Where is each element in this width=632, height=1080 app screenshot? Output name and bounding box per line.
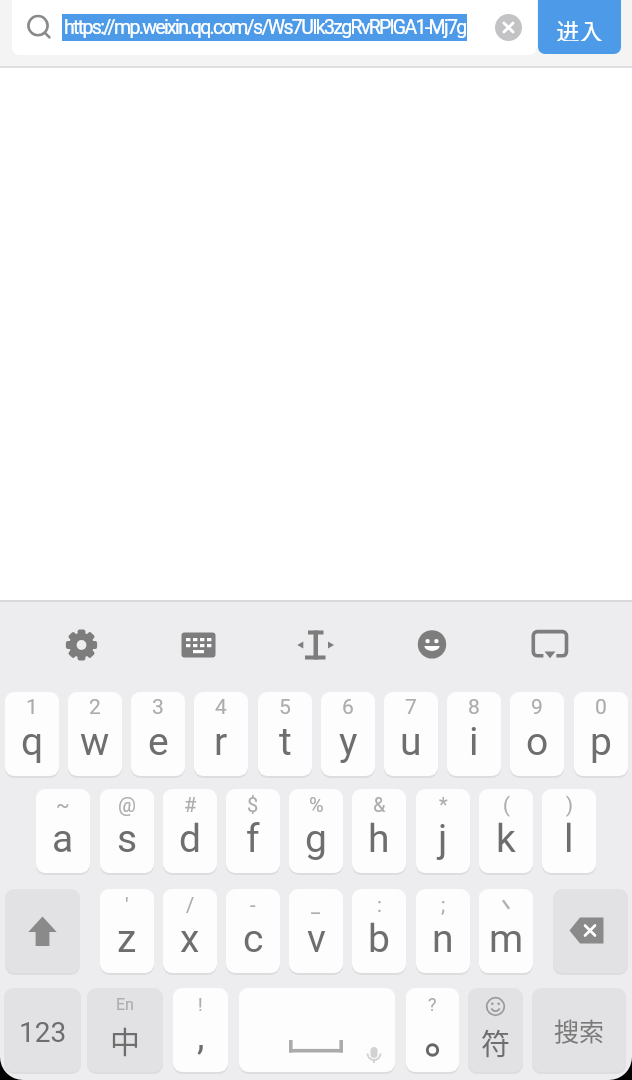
staticText: _ bbox=[311, 893, 321, 916]
staticText: https://mp.weixin.qq.com/s/Ws7UIk3zgRvRP… bbox=[64, 16, 466, 39]
button[interactable] bbox=[404, 617, 460, 673]
staticText: p bbox=[590, 719, 612, 765]
staticText: % bbox=[309, 793, 324, 816]
button[interactable] bbox=[226, 789, 280, 873]
staticText: 中 bbox=[110, 1018, 140, 1061]
staticText: u bbox=[400, 719, 422, 765]
staticText: h bbox=[368, 816, 390, 862]
button[interactable] bbox=[384, 692, 438, 776]
button[interactable] bbox=[68, 692, 122, 776]
staticText: 8 bbox=[468, 695, 480, 720]
button[interactable] bbox=[406, 988, 459, 1072]
button[interactable] bbox=[100, 789, 154, 873]
staticText: ; bbox=[441, 893, 446, 916]
staticText: b bbox=[368, 916, 390, 962]
staticText: ? bbox=[428, 994, 437, 1015]
staticText: o bbox=[526, 719, 549, 765]
staticText: t bbox=[279, 719, 292, 765]
button[interactable] bbox=[287, 617, 344, 673]
button[interactable] bbox=[173, 988, 228, 1072]
staticText: w bbox=[80, 719, 110, 765]
staticText: 0 bbox=[595, 695, 607, 720]
staticText: - bbox=[250, 893, 256, 916]
button[interactable] bbox=[163, 889, 217, 973]
staticText: * bbox=[439, 793, 448, 816]
staticText: i bbox=[469, 719, 479, 765]
staticText: c bbox=[243, 916, 264, 962]
button[interactable] bbox=[510, 692, 564, 776]
staticText: s bbox=[117, 816, 138, 862]
button[interactable] bbox=[163, 789, 217, 873]
button[interactable] bbox=[479, 889, 533, 973]
button[interactable] bbox=[352, 889, 406, 973]
button[interactable] bbox=[258, 692, 312, 776]
button[interactable] bbox=[194, 692, 248, 776]
button[interactable] bbox=[12, 0, 537, 55]
button[interactable] bbox=[352, 789, 406, 873]
staticText: y bbox=[339, 719, 358, 765]
staticText: 7 bbox=[405, 695, 417, 720]
button[interactable] bbox=[447, 692, 501, 776]
staticText: 4 bbox=[215, 695, 227, 720]
button[interactable] bbox=[538, 0, 621, 54]
staticText: 符 bbox=[481, 1021, 511, 1063]
staticText: 3 bbox=[152, 695, 164, 720]
staticText: ' bbox=[125, 893, 129, 916]
staticText: # bbox=[184, 793, 197, 816]
staticText: & bbox=[373, 793, 386, 816]
button[interactable] bbox=[553, 889, 628, 973]
staticText: 1 bbox=[26, 695, 38, 720]
staticText: n bbox=[432, 916, 454, 962]
staticText: / bbox=[186, 893, 195, 916]
button[interactable] bbox=[574, 692, 628, 776]
button[interactable] bbox=[542, 789, 596, 873]
button[interactable] bbox=[226, 889, 280, 973]
staticText: j bbox=[438, 816, 448, 862]
button[interactable] bbox=[321, 692, 375, 776]
button[interactable] bbox=[53, 617, 110, 673]
staticText: 5 bbox=[279, 695, 291, 720]
staticText: v bbox=[307, 916, 326, 962]
button[interactable] bbox=[36, 789, 90, 873]
staticText: l bbox=[564, 816, 574, 862]
button[interactable] bbox=[289, 789, 343, 873]
staticText: z bbox=[117, 916, 137, 962]
staticText: 123 bbox=[19, 1016, 67, 1049]
staticText: : bbox=[377, 893, 382, 916]
button[interactable] bbox=[170, 617, 227, 673]
button[interactable] bbox=[479, 789, 533, 873]
staticText: 9 bbox=[531, 695, 543, 720]
staticText: ! bbox=[198, 994, 203, 1015]
button[interactable] bbox=[522, 617, 578, 673]
staticText: $ bbox=[247, 793, 259, 816]
staticText: g bbox=[305, 816, 327, 862]
staticText: m bbox=[489, 916, 524, 962]
staticText: En bbox=[116, 995, 134, 1014]
staticText: @ bbox=[118, 793, 136, 816]
button[interactable] bbox=[495, 14, 522, 41]
staticText: 进入 bbox=[556, 13, 603, 41]
staticText: ) bbox=[566, 793, 573, 816]
button[interactable] bbox=[4, 988, 81, 1072]
button[interactable] bbox=[5, 889, 80, 973]
button[interactable] bbox=[289, 889, 343, 973]
button[interactable] bbox=[416, 789, 470, 873]
staticText: ( bbox=[503, 793, 510, 816]
button[interactable] bbox=[416, 889, 470, 973]
staticText: r bbox=[214, 719, 228, 765]
staticText: k bbox=[496, 816, 516, 862]
staticText: a bbox=[52, 816, 74, 862]
button[interactable] bbox=[532, 988, 626, 1072]
staticText: e bbox=[148, 719, 169, 765]
staticText: 2 bbox=[89, 695, 101, 720]
staticText: q bbox=[21, 719, 44, 765]
button[interactable] bbox=[239, 988, 395, 1072]
button[interactable] bbox=[5, 692, 59, 776]
staticText: f bbox=[246, 816, 260, 862]
button[interactable] bbox=[100, 889, 154, 973]
button[interactable] bbox=[131, 692, 185, 776]
staticText: ~ bbox=[56, 793, 70, 816]
button[interactable] bbox=[468, 988, 523, 1072]
staticText: , bbox=[197, 1014, 205, 1059]
button[interactable] bbox=[87, 988, 163, 1072]
